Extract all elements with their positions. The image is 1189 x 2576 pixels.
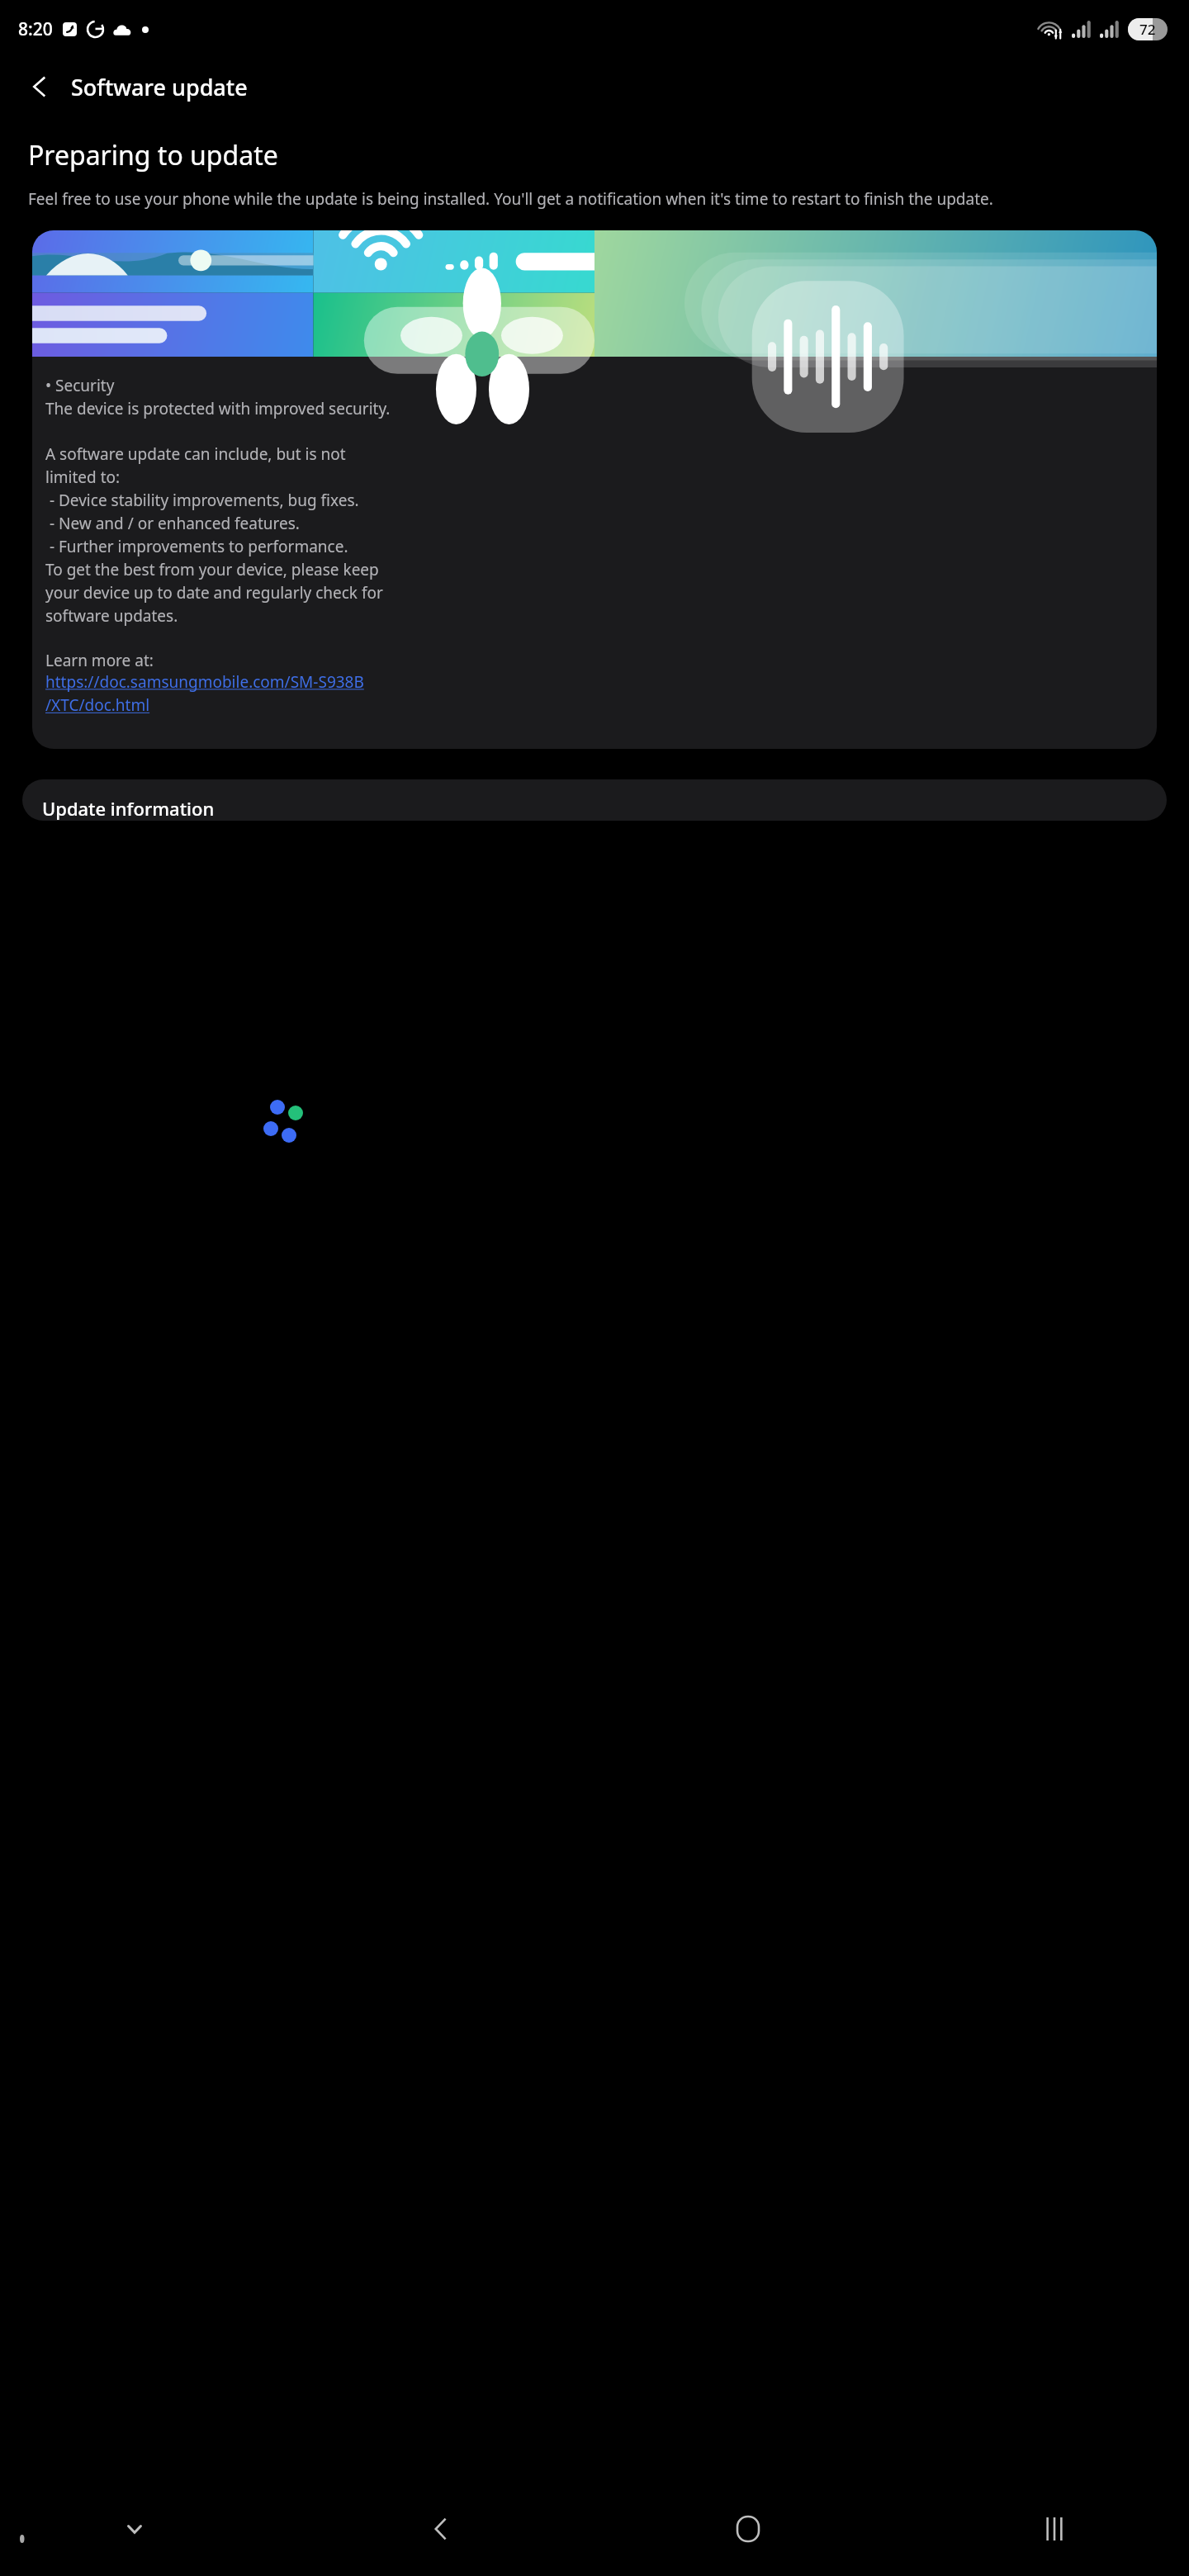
button[interactable]: Recents: [1027, 2502, 1082, 2556]
staticText: • Security The device is protected with …: [45, 375, 391, 419]
button[interactable]: Hide keyboard: [107, 2502, 162, 2556]
button[interactable]: Update information: [22, 779, 1167, 821]
button[interactable]: Home: [721, 2502, 775, 2556]
button[interactable]: Back: [17, 64, 63, 110]
button[interactable]: • Security The device is protected with …: [32, 230, 1157, 749]
staticText: Preparing to update: [28, 137, 278, 173]
staticText: Software update: [71, 72, 248, 102]
staticText: 8:20: [18, 17, 53, 41]
staticText: Feel free to use your phone while the up…: [28, 188, 993, 210]
staticText: Learn more at:: [45, 650, 154, 671]
staticText: Update information: [42, 796, 215, 821]
staticText: 72: [1139, 20, 1156, 39]
button[interactable]: Back: [414, 2502, 468, 2556]
staticText: A software update can include, but is no…: [45, 443, 383, 627]
button[interactable]: https://doc.samsungmobile.com/SM-S938B /…: [45, 671, 364, 716]
